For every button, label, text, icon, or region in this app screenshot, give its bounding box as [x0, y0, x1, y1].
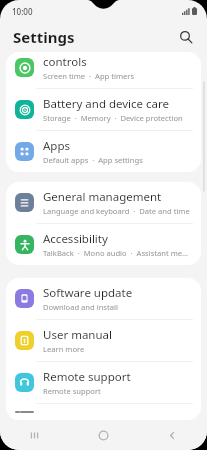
button[interactable]: Accessibility — [6, 224, 201, 265]
button[interactable]: Battery and device care — [6, 89, 201, 130]
staticText: Settings — [13, 27, 75, 47]
staticText: Language and keyboard · Date and time — [43, 206, 190, 216]
staticText: Accessibility — [43, 231, 108, 247]
button[interactable]: Software update — [6, 278, 201, 319]
staticText: Storage · Memory · Device protection — [43, 113, 183, 123]
staticText: controls — [43, 54, 87, 70]
staticText: User manual — [43, 327, 112, 343]
staticText: TalkBack · Mono audio · Assistant menu — [43, 248, 191, 258]
button[interactable]: Back — [138, 420, 207, 450]
staticText: Apps — [43, 138, 71, 154]
staticText: Screen time · App timers — [43, 71, 135, 81]
staticText: 10:00 — [12, 6, 33, 17]
button[interactable]: Apps — [6, 131, 201, 172]
staticText: Default apps · App settings — [43, 155, 143, 165]
staticText: Battery and device care — [43, 96, 170, 112]
button[interactable]: Recent apps — [0, 420, 69, 450]
staticText: Software update — [43, 285, 133, 301]
staticText: Learn more — [43, 344, 85, 354]
staticText: Download and install — [43, 302, 118, 312]
button[interactable]: Home — [69, 420, 138, 450]
staticText: General management — [43, 189, 162, 205]
staticText: Remote support — [43, 386, 101, 396]
button[interactable]: About phone — [6, 404, 201, 420]
button[interactable]: User manual — [6, 320, 201, 361]
button[interactable]: General management — [6, 182, 201, 223]
button[interactable]: Search settings — [173, 24, 199, 50]
button[interactable]: Remote support — [6, 362, 201, 403]
button[interactable]: controls — [6, 52, 201, 88]
staticText: Remote support — [43, 369, 131, 385]
